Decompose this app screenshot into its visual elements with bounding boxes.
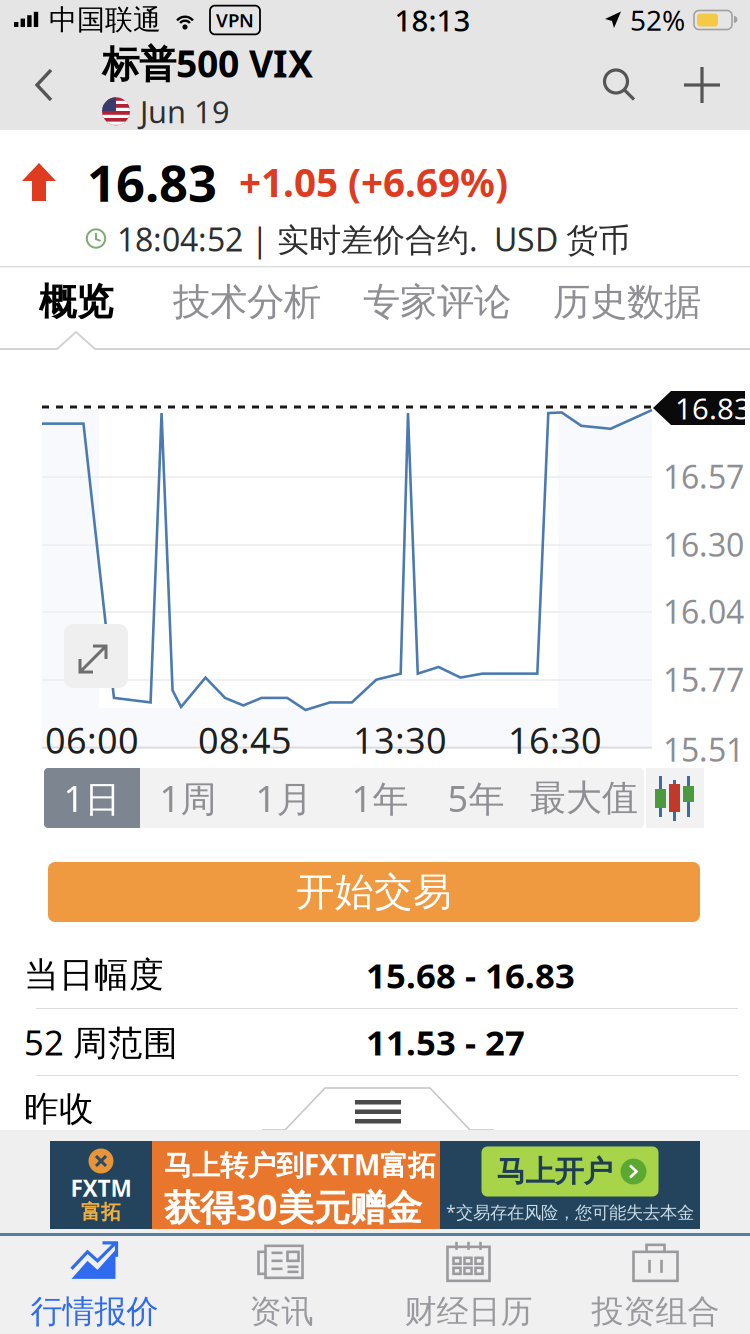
button[interactable]: Back [0,40,102,130]
button[interactable]: 1周 [140,768,236,828]
staticText: 专家评论 [363,279,511,325]
button[interactable]: 历史数据 [532,267,722,337]
staticText: 昨收 [24,1088,94,1130]
staticText: Jun 19 [140,91,230,132]
staticText: 06:00 [45,716,139,764]
button[interactable]: 开始交易 [48,862,700,922]
staticText: 马上开户 [496,1153,612,1189]
button[interactable]: 1年 [332,768,428,828]
button[interactable]: 1日 [44,768,140,828]
staticText: 1月 [255,774,312,822]
staticText: 概览 [39,279,113,325]
staticText: 财经日历 [404,1292,532,1331]
staticText: 投资组合 [591,1292,719,1331]
staticText: 5年 [447,774,504,822]
button[interactable]: 5年 [428,768,524,828]
staticText: 16.04 [663,590,744,632]
staticText: 52% [630,1,685,39]
staticText: 富拓 [81,1200,121,1224]
button[interactable]: FXTM advertisement [50,1141,700,1229]
button[interactable]: 财经日历 [375,1236,562,1334]
staticText: 11.53 - 27 [366,1019,525,1065]
staticText: 行情报价 [30,1292,158,1331]
button[interactable]: 专家评论 [342,267,532,337]
staticText: 资讯 [249,1292,313,1331]
button[interactable]: Fullscreen chart [64,624,128,688]
button[interactable]: 最大值 [524,768,644,828]
staticText: 1周 [159,774,216,822]
staticText: 16.30 [663,523,744,565]
staticText: VPN [216,8,254,32]
staticText: 历史数据 [553,279,701,325]
staticText: 最大值 [530,776,638,820]
staticText: 中国联通 [49,3,161,37]
staticText: 标普500 VIX [102,38,313,88]
button[interactable]: Candlestick chart [646,768,704,828]
staticText: 18:13 [394,0,470,39]
staticText: 当日幅度 [24,954,164,996]
staticText: 马上转户到FXTM富拓 [164,1146,436,1183]
staticText: 16.83 [675,388,750,427]
staticText: 15.51 [663,728,744,770]
staticText: 16:30 [508,716,602,764]
staticText: 1日 [63,774,120,822]
button[interactable]: Search [579,40,660,130]
staticText: 16.57 [663,455,744,497]
staticText: *交易存在风险，您可能失去本金 [446,1200,694,1223]
staticText: 13:30 [353,716,447,764]
button[interactable]: 投资组合 [562,1236,749,1334]
staticText: 18:04:52 | 实时差价合约. USD 货币 [117,218,630,260]
staticText: +1.05 (+6.69%) [239,156,508,208]
staticText: 获得30美元赠金 [164,1183,422,1231]
staticText: FXTM [70,1173,131,1203]
button[interactable]: 概览 [0,267,152,337]
button[interactable]: 1月 [236,768,332,828]
staticText: 16.83 [87,148,217,216]
button[interactable]: 资讯 [188,1236,375,1334]
staticText: 1年 [351,774,408,822]
staticText: 15.77 [663,658,744,700]
staticText: 技术分析 [173,279,321,325]
button[interactable]: 技术分析 [152,267,342,337]
staticText: 开始交易 [296,868,452,916]
button[interactable]: Add [660,40,750,130]
staticText: 15.68 - 16.83 [366,952,575,998]
staticText: 08:45 [198,716,292,764]
staticText: 52 周范围 [24,1019,178,1065]
button[interactable]: 行情报价 [1,1236,188,1334]
